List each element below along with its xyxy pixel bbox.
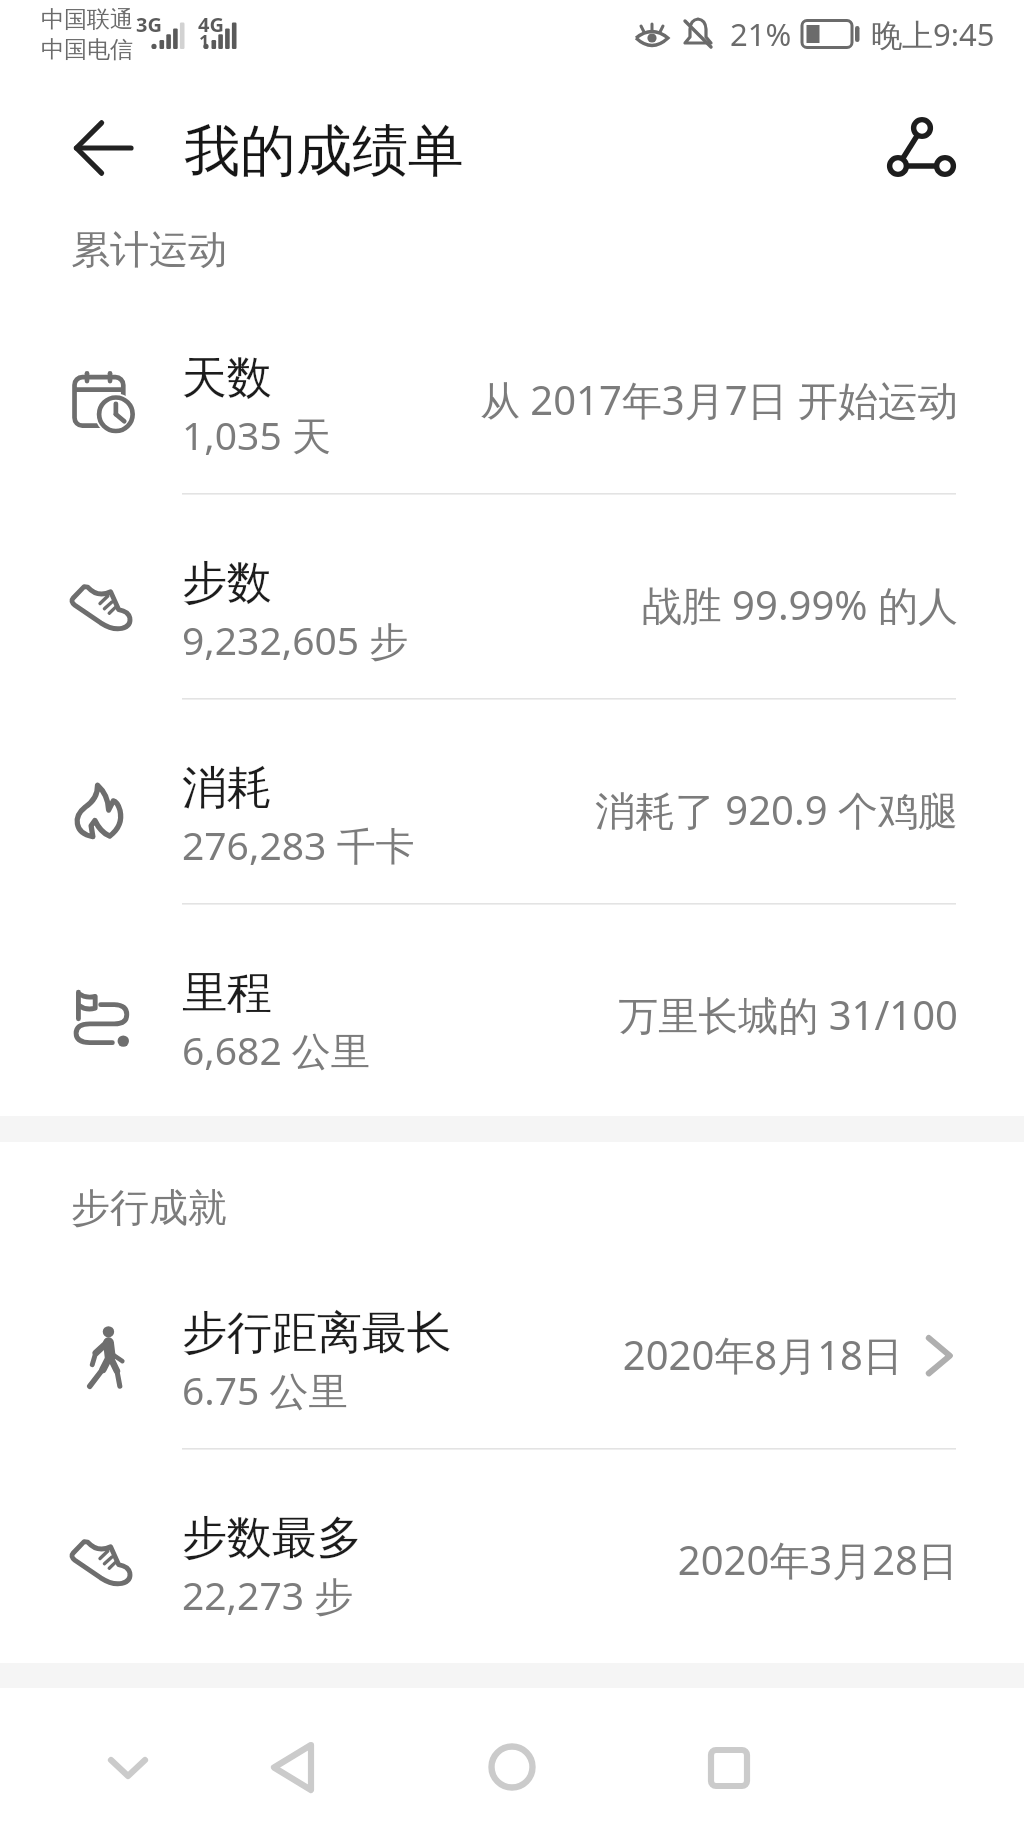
- staticText: 步数: [182, 555, 272, 612]
- staticText: 9,232,605 步: [182, 613, 409, 666]
- staticText: 中国电信: [41, 35, 133, 64]
- staticText: 步行成就: [71, 1183, 227, 1232]
- button[interactable]: 消耗: [0, 711, 1024, 916]
- button[interactable]: Home: [437, 1700, 587, 1821]
- staticText: 累计运动: [71, 225, 227, 274]
- button[interactable]: 步数最多: [0, 1461, 1024, 1666]
- staticText: 从 2017年3月7日 开始运动: [479, 372, 958, 427]
- staticText: 4G: [198, 11, 224, 38]
- staticText: 天数: [182, 350, 272, 407]
- staticText: 276,283 千卡: [182, 818, 415, 871]
- staticText: 晚上9:45: [871, 13, 995, 55]
- staticText: 2020年8月18日: [622, 1327, 903, 1382]
- staticText: 1,035 天: [182, 408, 331, 461]
- staticText: 我的成绩单: [184, 116, 464, 187]
- staticText: 22,273 步: [182, 1568, 354, 1621]
- button[interactable]: Back: [56, 100, 152, 196]
- staticText: 步行距离最长: [182, 1305, 452, 1362]
- staticText: 6,682 公里: [182, 1023, 370, 1076]
- staticText: 消耗: [182, 760, 272, 817]
- staticText: 2020年3月28日: [677, 1532, 958, 1587]
- button[interactable]: Back: [219, 1700, 369, 1821]
- staticText: 21%: [730, 13, 792, 55]
- staticText: 消耗了 920.9 个鸡腿: [594, 782, 958, 837]
- button[interactable]: 里程: [0, 916, 1024, 1121]
- staticText: 里程: [182, 965, 272, 1022]
- staticText: 战胜 99.99% 的人: [641, 577, 958, 632]
- button[interactable]: Share: [873, 99, 969, 195]
- button[interactable]: 天数: [0, 301, 1024, 506]
- button[interactable]: Recents: [654, 1701, 804, 1821]
- staticText: 1: [199, 29, 210, 54]
- staticText: 6.75 公里: [182, 1363, 348, 1416]
- staticText: 步数最多: [182, 1510, 362, 1567]
- staticText: 中国联通: [41, 5, 133, 34]
- staticText: 万里长城的 31/100: [618, 987, 958, 1042]
- button[interactable]: 步数: [0, 506, 1024, 711]
- button[interactable]: Hide keyboard: [53, 1700, 203, 1821]
- button[interactable]: 步行距离最长: [0, 1256, 1024, 1461]
- staticText: 3G: [136, 11, 162, 38]
